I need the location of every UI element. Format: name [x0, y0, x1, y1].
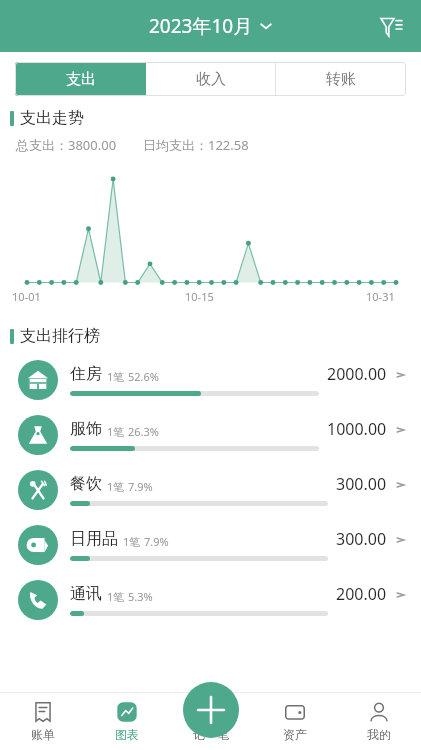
button[interactable]: 资产 — [253, 692, 337, 750]
staticText: 26.3% — [128, 424, 159, 439]
button[interactable]: 图表 — [85, 692, 169, 750]
staticText: 餐饮 — [70, 474, 102, 494]
staticText: 账单 — [31, 727, 55, 742]
staticText: 住房 — [70, 364, 102, 384]
button[interactable]: 通讯 — [0, 572, 421, 627]
staticText: 1笔 — [107, 479, 125, 494]
staticText: 300.00 — [336, 528, 387, 550]
staticText: 转账 — [326, 70, 356, 89]
button[interactable]: 住房 — [0, 352, 421, 407]
button[interactable]: 我的 — [337, 692, 421, 750]
button[interactable]: 账单 — [0, 692, 85, 750]
staticText: 记一笔 — [193, 727, 229, 742]
button[interactable]: 支出 — [15, 62, 146, 96]
staticText: 资产 — [283, 727, 307, 742]
staticText: 日用品 — [70, 529, 118, 549]
button[interactable]: 餐饮 — [0, 462, 421, 517]
button[interactable]: 记一笔 — [169, 692, 253, 750]
staticText: 1笔 — [107, 589, 125, 604]
button[interactable]: 日用品 — [0, 517, 421, 572]
staticText: 通讯 — [70, 584, 102, 604]
staticText: 总支出：3800.00 — [16, 136, 117, 154]
button[interactable]: 收入 — [146, 62, 276, 96]
staticText: 图表 — [115, 727, 139, 742]
staticText: 支出排行榜 — [20, 326, 100, 346]
button[interactable]: 服饰 — [0, 407, 421, 462]
button[interactable]: 2023年10月 — [149, 13, 273, 39]
button[interactable]: 转账 — [276, 62, 406, 96]
staticText: 10-15 — [185, 289, 214, 304]
staticText: 5.3% — [128, 589, 153, 604]
button[interactable]: Filter — [373, 8, 409, 44]
staticText: 2023年10月 — [149, 13, 253, 39]
staticText: 10-31 — [366, 289, 395, 304]
staticText: 7.9% — [144, 534, 169, 549]
staticText: 7.9% — [128, 479, 153, 494]
staticText: 10-01 — [12, 289, 41, 304]
staticText: 2000.00 — [327, 363, 387, 385]
staticText: 我的 — [367, 727, 391, 742]
staticText: 1笔 — [107, 424, 125, 439]
staticText: 日均支出：122.58 — [143, 136, 249, 154]
staticText: 52.6% — [128, 369, 159, 384]
staticText: 收入 — [196, 70, 226, 89]
staticText: 1笔 — [107, 369, 125, 384]
staticText: 1000.00 — [327, 418, 387, 440]
staticText: 300.00 — [336, 473, 387, 495]
staticText: 200.00 — [336, 583, 387, 605]
staticText: 服饰 — [70, 419, 102, 439]
button[interactable]: Add record — [183, 682, 239, 738]
staticText: 1笔 — [123, 534, 141, 549]
staticText: 支出 — [66, 70, 96, 89]
staticText: 支出走势 — [20, 108, 84, 128]
